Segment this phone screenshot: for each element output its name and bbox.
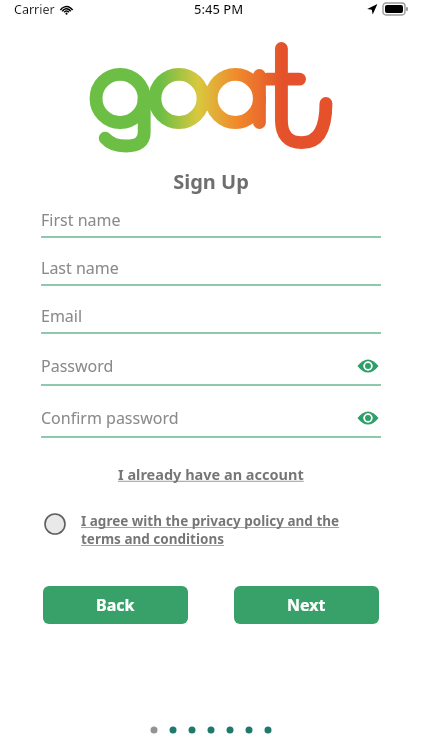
staticText: Last name — [41, 257, 381, 279]
button[interactable]: Last name — [41, 257, 381, 286]
staticText: Back — [96, 594, 135, 616]
staticText: Password — [41, 355, 355, 377]
button[interactable]: Show password — [355, 353, 381, 379]
staticText: Sign Up — [0, 168, 422, 195]
button[interactable]: I agree with the privacy policy and the … — [81, 512, 382, 548]
staticText: Email — [41, 305, 381, 327]
button[interactable]: I already have an account — [112, 460, 310, 488]
button[interactable]: Show password — [355, 405, 381, 431]
staticText: 5:45 PM — [194, 0, 244, 18]
staticText: First name — [41, 209, 381, 231]
staticText: Carrier — [14, 1, 55, 18]
staticText: I agree with the privacy policy and the … — [81, 512, 382, 548]
button[interactable]: Next — [234, 586, 379, 624]
button[interactable]: I agree checkbox — [43, 512, 67, 536]
button[interactable]: Email — [41, 305, 381, 334]
button[interactable]: Back — [43, 586, 188, 624]
staticText: Confirm password — [41, 407, 355, 429]
button[interactable]: Confirm password — [41, 405, 381, 438]
button[interactable]: First name — [41, 209, 381, 238]
staticText: I already have an account — [118, 464, 304, 484]
button[interactable]: Password — [41, 353, 381, 386]
staticText: Next — [287, 594, 326, 616]
